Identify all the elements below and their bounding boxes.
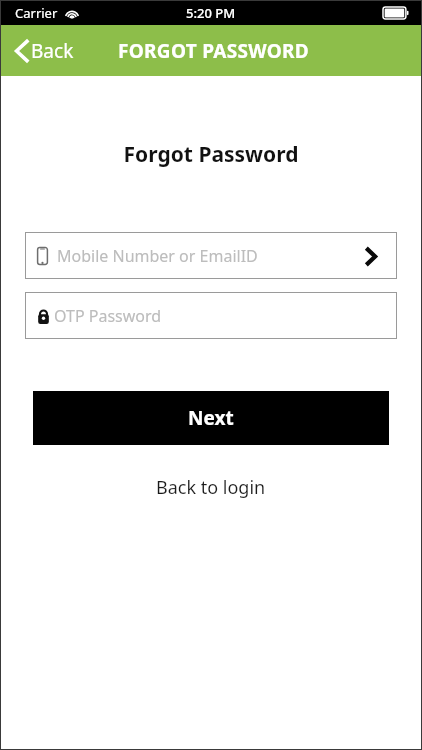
button[interactable]: Submit xyxy=(357,243,383,269)
staticText: Back to login xyxy=(156,475,266,500)
staticText: OTP Password xyxy=(54,305,162,327)
staticText: Back xyxy=(31,38,74,64)
button[interactable]: Back xyxy=(1,25,84,76)
staticText: Forgot Password xyxy=(1,140,421,169)
button[interactable]: Back to login xyxy=(144,471,278,504)
button[interactable]: Mobile Number or EmailID xyxy=(25,232,397,279)
staticText: Carrier xyxy=(15,4,58,22)
staticText: Next xyxy=(188,405,234,431)
button[interactable]: OTP Password xyxy=(25,292,397,339)
staticText: 5:20 PM xyxy=(186,4,236,22)
staticText: Mobile Number or EmailID xyxy=(57,245,357,267)
button[interactable]: Next xyxy=(33,391,389,445)
staticText: FORGOT PASSWORD xyxy=(118,38,310,64)
